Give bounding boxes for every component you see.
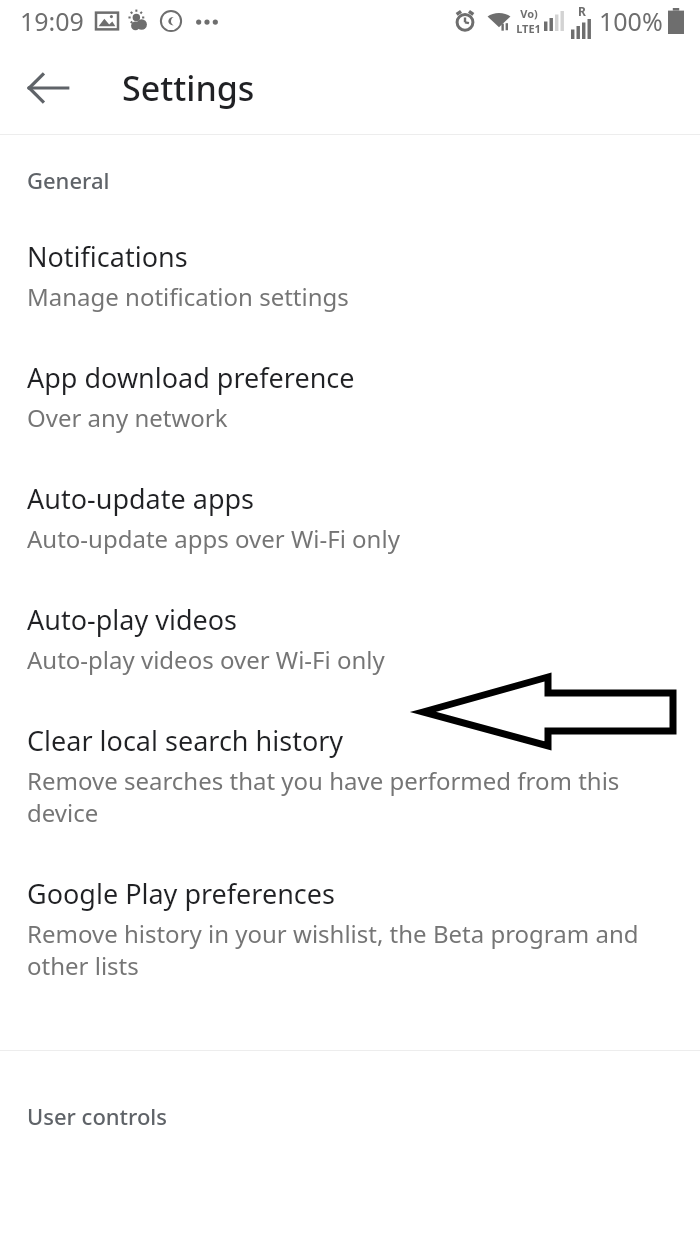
staticText: General [27,165,110,195]
staticText: Google Play preferences [27,875,335,912]
staticText: Remove history in your wishlist, the Bet… [27,917,660,982]
staticText: 19:09 [20,4,84,38]
staticText: Clear local search history [27,722,344,759]
staticText: App download preference [27,359,355,396]
staticText: User controls [27,1101,167,1131]
button[interactable]: Back [22,62,74,114]
staticText: Vo) [520,6,538,21]
staticText: 100% [599,4,663,38]
button[interactable]: Google Play preferences [0,875,700,1028]
staticText: Auto-update apps over Wi-Fi only [27,522,400,555]
button[interactable]: Notifications [0,238,700,359]
button[interactable]: Clear local search history [0,722,700,875]
staticText: Auto-play videos [27,601,238,638]
staticText: Over any network [27,401,228,434]
staticText: Notifications [27,238,188,275]
staticText: Manage notification settings [27,280,349,313]
button[interactable]: App download preference [0,359,700,480]
button[interactable]: Auto-play videos [0,601,700,722]
button[interactable]: Auto-update apps [0,480,700,601]
staticText: LTE1 [516,21,541,36]
staticText: R [578,3,586,19]
staticText: Auto-update apps [27,480,255,517]
staticText: Auto-play videos over Wi-Fi only [27,643,385,676]
staticText: Settings [122,65,255,111]
staticText: Remove searches that you have performed … [27,764,660,829]
